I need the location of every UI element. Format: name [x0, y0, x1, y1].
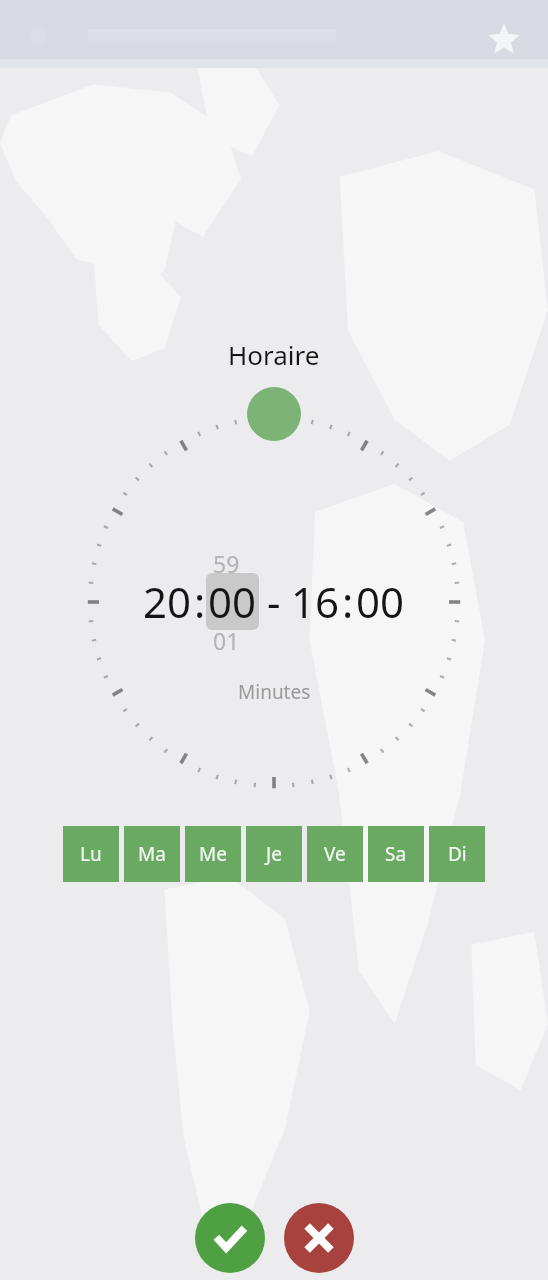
button[interactable]: Ma: [124, 826, 180, 882]
button[interactable]: Confirm: [195, 1203, 265, 1273]
staticText: 00: [208, 573, 257, 630]
staticText: 00: [356, 573, 405, 630]
staticText: Ma: [138, 841, 166, 867]
button[interactable]: 00: [354, 573, 407, 630]
staticText: Minutes: [238, 679, 311, 705]
staticText: Je: [266, 841, 282, 867]
button[interactable]: 20: [141, 573, 194, 630]
button[interactable]: 00: [206, 573, 259, 630]
button[interactable]: Cancel: [284, 1203, 354, 1273]
staticText: 01: [213, 625, 240, 656]
button[interactable]: Di: [429, 826, 485, 882]
staticText: Ve: [324, 841, 346, 867]
button[interactable]: Lu: [63, 826, 119, 882]
staticText: Di: [448, 841, 467, 867]
staticText: :: [342, 573, 354, 630]
staticText: Me: [199, 841, 227, 867]
staticText: 20: [143, 573, 192, 630]
button[interactable]: Sa: [368, 826, 424, 882]
button[interactable]: Me: [185, 826, 241, 882]
button[interactable]: Je: [246, 826, 302, 882]
button[interactable]: Start time handle: [247, 387, 301, 441]
staticText: Lu: [80, 841, 102, 867]
staticText: 16: [291, 573, 340, 630]
staticText: 59: [213, 548, 240, 579]
staticText: -: [267, 573, 281, 630]
button[interactable]: Ve: [307, 826, 363, 882]
staticText: Horaire: [228, 337, 320, 372]
button[interactable]: 16: [289, 573, 342, 630]
other: Favorite: [486, 22, 522, 58]
staticText: Sa: [385, 841, 407, 867]
staticText: :: [194, 573, 206, 630]
